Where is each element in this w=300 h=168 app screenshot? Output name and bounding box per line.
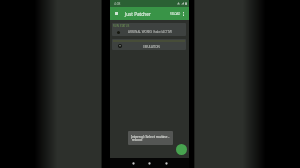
button[interactable]: Home [145,159,154,168]
button[interactable]: Open navigation drawer [112,7,121,20]
staticText: Just Patcher [125,11,151,17]
staticText: 4:08 [114,2,121,6]
button[interactable]: Apply patch [176,144,187,155]
button[interactable]: RELOAD [168,7,183,20]
button[interactable]: Back [129,159,138,168]
button[interactable]: More options [180,7,187,20]
staticText: RUN STATUS [113,24,130,28]
staticText: Internal: Select routine - 'reboot' [131,134,170,142]
button[interactable]: EMULATION [112,39,186,50]
button[interactable]: Recents [162,159,171,168]
staticText: RELOAD [170,12,181,16]
button[interactable]: RUN STATUS [112,23,186,36]
staticText: ARSENAL WORKS (hake) ACTIVE [128,30,173,34]
staticText: EMULATION [143,45,160,49]
